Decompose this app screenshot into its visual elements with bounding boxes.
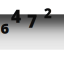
staticText: 7	[27, 9, 37, 32]
staticText: 6	[0, 18, 9, 38]
staticText: 4	[11, 4, 21, 27]
staticText: 2	[44, 4, 52, 22]
